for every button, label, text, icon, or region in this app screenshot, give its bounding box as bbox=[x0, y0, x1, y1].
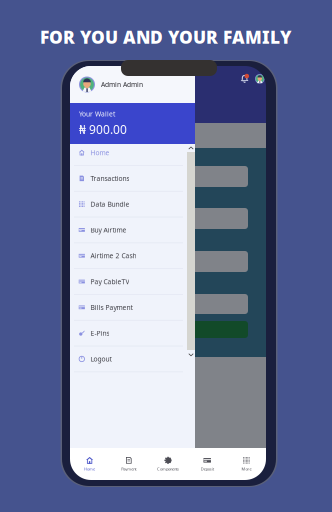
staticText: Pay CableTV bbox=[90, 277, 129, 286]
staticText: Home bbox=[90, 148, 109, 157]
button[interactable]: Payment bbox=[109, 448, 148, 480]
staticText: Transactions bbox=[90, 174, 129, 183]
button[interactable]: Pay CableTV bbox=[70, 269, 187, 294]
button[interactable]: Buy Airtime bbox=[70, 217, 187, 242]
staticText: ₦ 900.00 bbox=[79, 121, 127, 137]
button[interactable]: Home bbox=[70, 140, 187, 165]
button[interactable]: Logout bbox=[70, 346, 187, 371]
button[interactable]: Deposit bbox=[188, 448, 227, 480]
staticText: Buy Airtime bbox=[90, 225, 126, 234]
button[interactable]: Notifications bbox=[240, 74, 249, 84]
staticText: Admin Admin bbox=[101, 80, 143, 89]
button[interactable]: Airtime 2 Cash bbox=[70, 243, 187, 268]
button[interactable]: More bbox=[227, 448, 266, 480]
staticText: Airtime 2 Cash bbox=[90, 251, 136, 260]
button[interactable]: Profile bbox=[255, 74, 264, 83]
staticText: More bbox=[241, 466, 251, 471]
staticText: Components bbox=[157, 466, 179, 471]
button[interactable]: Data Bundle bbox=[70, 192, 187, 217]
staticText: Home bbox=[84, 466, 95, 471]
button[interactable]: Home bbox=[70, 448, 109, 480]
staticText: Payment bbox=[121, 466, 136, 471]
button[interactable]: Components bbox=[148, 448, 188, 480]
staticText: E-Pins bbox=[90, 329, 109, 338]
staticText: Data Bundle bbox=[90, 200, 129, 209]
staticText: Your Wallet bbox=[79, 110, 115, 118]
button[interactable]: Bills Payment bbox=[70, 295, 187, 320]
staticText: Deposit bbox=[201, 466, 214, 471]
button[interactable]: Transactions bbox=[70, 166, 187, 191]
staticText: FOR YOU AND YOUR FAMILY bbox=[40, 25, 292, 48]
staticText: Bills Payment bbox=[90, 303, 132, 312]
staticText: Logout bbox=[90, 354, 111, 363]
button[interactable]: E-Pins bbox=[70, 321, 187, 346]
